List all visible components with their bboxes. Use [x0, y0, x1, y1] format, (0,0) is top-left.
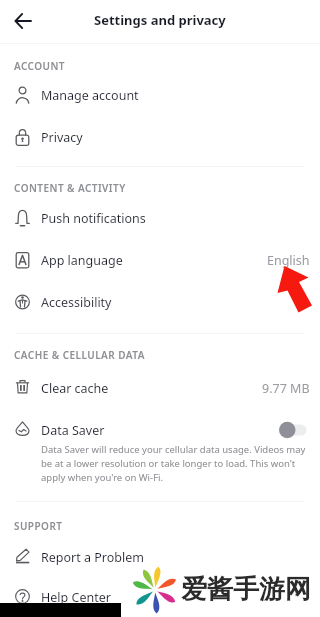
button[interactable]: Help Center	[0, 578, 320, 617]
staticText: English	[267, 252, 310, 269]
staticText: App language	[41, 252, 123, 269]
button[interactable]: Data Saver toggle	[279, 421, 308, 439]
button[interactable]: Data Saver	[0, 409, 320, 451]
button[interactable]: App language	[0, 239, 320, 281]
button[interactable]: Push notifications	[0, 197, 320, 239]
staticText: 爱酱手游网	[181, 573, 311, 606]
staticText: Push notifications	[41, 210, 146, 227]
button[interactable]: Manage account	[0, 74, 320, 116]
staticText: SUPPORT	[14, 519, 63, 533]
staticText: Report a Problem	[41, 549, 144, 566]
staticText: ACCOUNT	[14, 59, 65, 73]
button[interactable]: Accessibility	[0, 281, 320, 323]
staticText: Privacy	[41, 129, 83, 146]
staticText: Manage account	[41, 87, 139, 104]
staticText: Settings and privacy	[94, 11, 226, 29]
staticText: CACHE & CELLULAR DATA	[14, 348, 145, 362]
staticText: Data Saver will reduce your cellular dat…	[41, 443, 308, 484]
staticText: Accessibility	[41, 294, 112, 311]
staticText: 9.77 MB	[262, 380, 310, 397]
staticText: CONTENT & ACTIVITY	[14, 181, 126, 195]
staticText: Clear cache	[41, 380, 109, 397]
staticText: Data Saver	[41, 422, 105, 439]
button[interactable]: Clear cache	[0, 367, 320, 409]
staticText: Help Center	[41, 589, 111, 606]
button[interactable]: Report a Problem	[0, 536, 320, 578]
button[interactable]: Back	[7, 5, 39, 37]
button[interactable]: Privacy	[0, 116, 320, 158]
